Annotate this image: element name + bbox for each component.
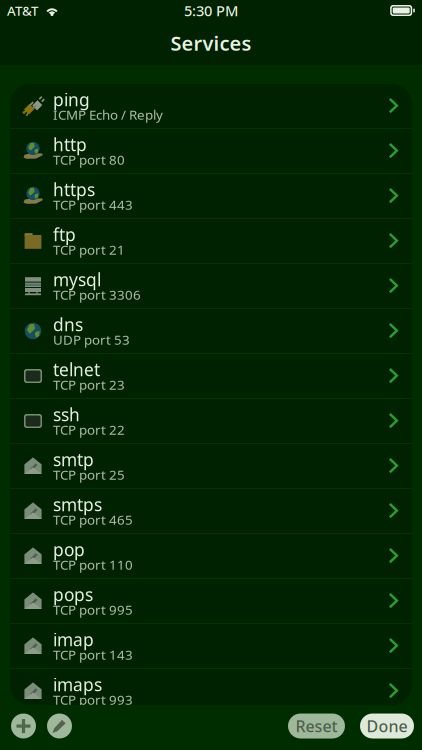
button[interactable]: ping: [10, 84, 412, 129]
staticText: TCP port 22: [53, 421, 125, 438]
button[interactable]: https: [10, 174, 412, 219]
button[interactable]: mysql: [10, 264, 412, 309]
button[interactable]: pop: [10, 534, 412, 579]
staticText: ssh: [53, 403, 80, 426]
staticText: ping: [53, 88, 90, 111]
button[interactable]: Edit services: [47, 713, 72, 738]
staticText: Reset: [295, 715, 337, 737]
staticText: imap: [53, 628, 94, 651]
staticText: TCP port 443: [53, 196, 133, 213]
staticText: imaps: [53, 673, 102, 696]
button[interactable]: telnet: [10, 354, 412, 399]
button[interactable]: Add service: [11, 713, 36, 738]
button[interactable]: imap: [10, 624, 412, 669]
staticText: TCP port 110: [53, 556, 133, 573]
staticText: TCP port 993: [53, 691, 133, 708]
button[interactable]: smtp: [10, 444, 412, 489]
staticText: TCP port 23: [53, 376, 125, 393]
staticText: smtps: [53, 493, 102, 516]
staticText: mysql: [53, 268, 101, 291]
staticText: telnet: [53, 358, 100, 381]
staticText: TCP port 25: [53, 466, 125, 483]
staticText: TCP port 143: [53, 646, 133, 663]
staticText: 5:30 PM: [184, 1, 238, 20]
staticText: http: [53, 133, 87, 156]
staticText: ftp: [53, 223, 76, 246]
staticText: Services: [170, 30, 251, 56]
button[interactable]: ssh: [10, 399, 412, 444]
staticText: TCP port 3306: [53, 286, 141, 303]
button[interactable]: Done: [360, 713, 414, 738]
staticText: TCP port 995: [53, 601, 133, 618]
staticText: TCP port 465: [53, 511, 133, 528]
staticText: dns: [53, 313, 83, 336]
button[interactable]: ftp: [10, 219, 412, 264]
button[interactable]: smtps: [10, 489, 412, 534]
staticText: https: [53, 178, 95, 201]
staticText: Done: [366, 715, 407, 737]
button[interactable]: dns: [10, 309, 412, 354]
staticText: pops: [53, 583, 93, 606]
button[interactable]: http: [10, 129, 412, 174]
staticText: TCP port 80: [53, 151, 125, 168]
staticText: pop: [53, 538, 85, 561]
button[interactable]: pops: [10, 579, 412, 624]
button[interactable]: imaps: [10, 669, 412, 714]
staticText: TCP port 21: [53, 241, 125, 258]
staticText: ICMP Echo / Reply: [53, 106, 163, 123]
staticText: smtp: [53, 448, 94, 471]
staticText: UDP port 53: [53, 331, 130, 348]
staticText: AT&T: [7, 2, 38, 19]
button[interactable]: Reset: [288, 713, 345, 738]
